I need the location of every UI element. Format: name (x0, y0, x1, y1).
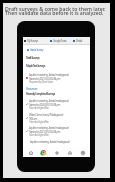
button[interactable]: Settings (78, 148, 87, 157)
staticText: Show more (26, 87, 38, 91)
button[interactable]: Aquifer monitoring - Arteta (madagascar) (26, 126, 89, 138)
staticText: Submitted by JanWise (29, 133, 49, 137)
staticText: Google Charts (53, 39, 67, 43)
staticText: Maple Test Surveys (26, 64, 46, 68)
button[interactable]: Chrome (39, 148, 48, 157)
staticText: Started on 2021-09-03 02:54 pm (29, 130, 61, 134)
staticText: Requested by Driver Series (29, 80, 53, 84)
staticText: Aquifer monitoring - Arteta (madagascar) (29, 73, 69, 77)
staticText: Submitted by JanWise (29, 120, 49, 124)
staticText: 9:06 am (29, 117, 37, 121)
staticText: Draft Surveys (26, 56, 40, 60)
button[interactable]: Start a Survey (27, 48, 43, 52)
button[interactable]: Google Charts (50, 39, 67, 43)
staticText: Draft surveys & come back to them later. (5, 5, 106, 12)
staticText: Start a Survey (30, 48, 43, 52)
staticText: Started on 2021-03-03 02:54 pm (29, 77, 61, 81)
button[interactable]: Bookmarks (65, 148, 74, 157)
staticText: Details (76, 39, 83, 43)
button[interactable]: Details (73, 39, 83, 43)
staticText: Aquifer monitoring - Arteta (madagascar) (29, 99, 69, 103)
button[interactable]: Aquifer monitoring - Arteta (madagascar) (26, 73, 89, 85)
staticText: Then validate data before it is analyzed… (5, 9, 104, 16)
staticText: Aquifer monitoring - Arteta (madagascar) (30, 140, 70, 144)
button[interactable]: Home (26, 148, 35, 157)
button[interactable]: Show more (26, 87, 38, 91)
staticText: Recently Completed Surveys (26, 92, 55, 96)
staticText: My Surveys (27, 39, 38, 43)
staticText: Started on 2020-09-01 02:54 pm (29, 103, 61, 107)
staticText: Water Demo Survey (Madagascar) (29, 113, 63, 117)
staticText: Submitted by JanWise (29, 106, 49, 110)
button[interactable]: New tab (52, 148, 61, 157)
button[interactable]: Water Demo Survey (Madagascar) (26, 113, 89, 125)
staticText: Aquifer monitoring - Arteta (madagascar) (29, 126, 69, 130)
button[interactable]: My Surveys (24, 39, 38, 43)
button[interactable]: Aquifer monitoring - Arteta (madagascar) (26, 99, 89, 111)
